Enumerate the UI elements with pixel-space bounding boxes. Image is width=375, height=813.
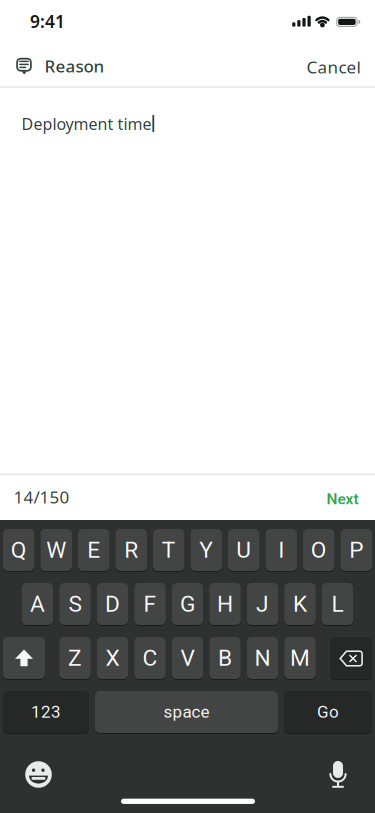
staticText: E — [87, 537, 100, 563]
staticText: R — [124, 537, 138, 563]
staticText: T — [162, 537, 176, 563]
staticText: Deployment time — [21, 113, 151, 135]
staticText: V — [180, 645, 194, 671]
staticText: Reason — [44, 54, 104, 78]
staticText: C — [142, 645, 157, 671]
staticText: F — [143, 591, 156, 617]
staticText: 9:41 — [30, 9, 65, 33]
staticText: I — [278, 537, 284, 563]
staticText: Q — [11, 537, 27, 563]
staticText: O — [311, 537, 327, 563]
staticText: W — [46, 537, 66, 563]
staticText: Z — [68, 645, 82, 671]
staticText: X — [105, 645, 119, 671]
staticText: B — [218, 645, 232, 671]
staticText: 14/150 — [13, 485, 69, 509]
staticText: S — [68, 591, 81, 617]
staticText: A — [30, 591, 45, 617]
staticText: G — [180, 591, 195, 617]
staticText: Cancel — [306, 55, 360, 79]
staticText: Y — [199, 537, 213, 563]
staticText: N — [254, 645, 270, 671]
staticText: Go — [317, 702, 339, 722]
staticText: K — [293, 591, 307, 617]
staticText: P — [349, 537, 363, 563]
staticText: space — [163, 702, 209, 722]
staticText: L — [331, 591, 343, 617]
staticText: H — [217, 591, 233, 617]
staticText: D — [105, 591, 120, 617]
staticText: J — [256, 591, 269, 617]
staticText: 123 — [31, 702, 61, 722]
staticText: Next — [326, 490, 358, 508]
staticText: M — [290, 645, 310, 671]
staticText: U — [236, 537, 251, 563]
